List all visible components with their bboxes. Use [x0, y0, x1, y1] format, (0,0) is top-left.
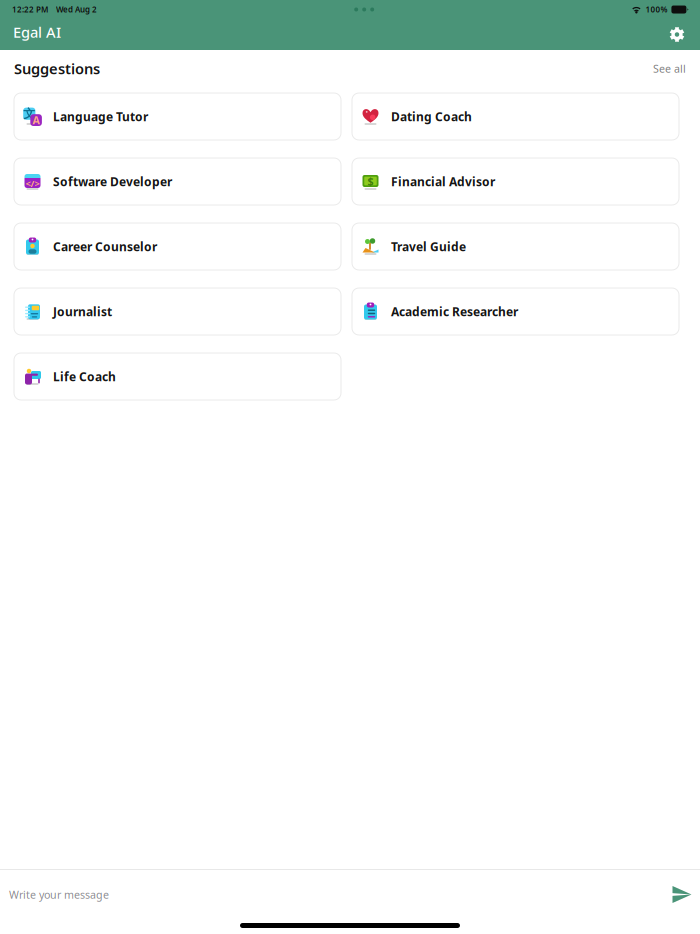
- staticText: $: [367, 174, 373, 188]
- button[interactable]: Travel Guide: [352, 223, 679, 270]
- staticText: Egal AI: [13, 22, 61, 42]
- staticText: Life Coach: [53, 368, 116, 384]
- button[interactable]: Dating Coach: [352, 93, 679, 140]
- staticText: Journalist: [53, 303, 112, 319]
- staticText: 文: [23, 106, 35, 121]
- staticText: Financial Advisor: [391, 173, 495, 189]
- staticText: </>: [25, 177, 39, 189]
- button[interactable]: $: [352, 158, 679, 205]
- staticText: Academic Researcher: [391, 303, 518, 319]
- staticText: Language Tutor: [53, 108, 148, 124]
- button[interactable]: Life Coach: [14, 353, 341, 400]
- button[interactable]: Academic Researcher: [352, 288, 679, 335]
- button[interactable]: Settings: [662, 19, 692, 50]
- button[interactable]: Send: [668, 879, 696, 909]
- staticText: A: [33, 113, 40, 127]
- staticText: Suggestions: [14, 59, 100, 78]
- staticText: Wed Aug 2: [56, 4, 97, 15]
- button[interactable]: </>: [14, 158, 341, 205]
- staticText: See all: [653, 61, 686, 76]
- staticText: Travel Guide: [391, 238, 466, 254]
- staticText: Dating Coach: [391, 108, 472, 124]
- staticText: 100%: [645, 4, 667, 15]
- staticText: 12:22 PM: [12, 4, 48, 15]
- staticText: Write your message: [9, 887, 109, 902]
- button[interactable]: Journalist: [14, 288, 341, 335]
- staticText: Software Developer: [53, 173, 172, 189]
- staticText: Career Counselor: [53, 238, 157, 254]
- button[interactable]: 文: [14, 93, 341, 140]
- button[interactable]: Career Counselor: [14, 223, 341, 270]
- button[interactable]: See all: [653, 61, 686, 76]
